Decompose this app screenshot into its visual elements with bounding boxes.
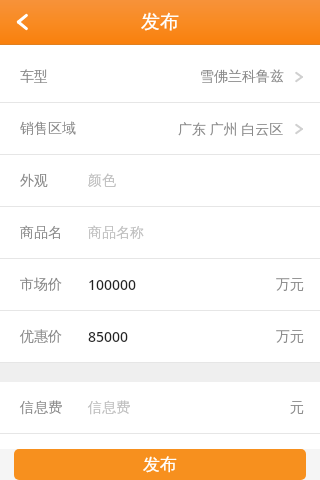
staticText: 商品名称 <box>88 224 144 242</box>
staticText: 销售区域 <box>20 120 76 138</box>
staticText: 雪佛兰科鲁兹 <box>200 68 284 86</box>
staticText: 信息费 <box>88 399 130 417</box>
staticText: 万元 <box>276 328 304 346</box>
staticText: 优惠价 <box>20 328 62 346</box>
staticText: 发布 <box>141 10 179 34</box>
button[interactable]: 发布 <box>14 449 306 480</box>
staticText: 85000 <box>88 327 129 346</box>
button[interactable]: Back <box>0 0 44 44</box>
staticText: 发布 <box>143 454 177 475</box>
button[interactable]: 信息费 <box>0 382 320 433</box>
button[interactable]: 车型 <box>0 51 320 102</box>
button[interactable]: 外观 <box>0 155 320 206</box>
staticText: 广东 广州 白云区 <box>178 119 284 138</box>
staticText: 信息费 <box>20 399 62 417</box>
staticText: 市场价 <box>20 276 62 294</box>
staticText: 颜色 <box>88 172 116 190</box>
staticText: 外观 <box>20 172 48 190</box>
button[interactable]: 销售区域 <box>0 103 320 154</box>
staticText: 元 <box>290 399 304 417</box>
button[interactable]: 优惠价 <box>0 311 320 362</box>
button[interactable]: 市场价 <box>0 259 320 310</box>
staticText: 100000 <box>88 275 137 294</box>
button[interactable]: 商品名 <box>0 207 320 258</box>
staticText: 车型 <box>20 68 48 86</box>
staticText: 商品名 <box>20 224 62 242</box>
staticText: 万元 <box>276 276 304 294</box>
